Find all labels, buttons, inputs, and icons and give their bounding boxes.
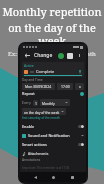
staticText: Day and Time <box>22 78 43 82</box>
button[interactable]: Enable <box>22 122 84 131</box>
staticText: x <box>79 84 81 89</box>
staticText: Monthly repetition <box>2 4 102 19</box>
button[interactable]: Recents <box>68 173 76 181</box>
button[interactable]: Delete <box>67 53 73 59</box>
staticText: Enable <box>22 124 35 129</box>
button[interactable]: Mon 30/09/2024 <box>22 83 55 90</box>
button[interactable]: Back <box>31 173 39 181</box>
staticText: Every <box>22 100 31 105</box>
button[interactable]: Smart actions <box>22 140 84 149</box>
staticText: Sound and Notification <box>28 133 70 138</box>
button[interactable]: 1 <box>33 100 38 106</box>
staticText: Attachments <box>28 151 49 156</box>
staticText: Monthly <box>42 101 55 105</box>
button[interactable]: Active <box>22 62 84 77</box>
button[interactable]: More options <box>76 52 83 59</box>
staticText: Annotations <box>22 158 41 162</box>
button[interactable]: Sound and Notification <box>22 131 84 140</box>
button[interactable]: Monthly <box>40 99 70 106</box>
staticText: Repeat <box>22 91 35 96</box>
button[interactable]: Attachments <box>22 151 84 156</box>
button[interactable]: Back <box>23 51 32 60</box>
staticText: 1 <box>35 101 37 106</box>
button[interactable]: on the day of the week <box>22 108 66 115</box>
staticText: Ex: first Saturday of the month <box>8 50 96 58</box>
staticText: Complete <box>36 69 55 74</box>
staticText: Change <box>34 52 53 59</box>
button[interactable]: 17:00 <box>57 83 73 90</box>
staticText: Mon 30/09/2024 <box>25 84 52 89</box>
button[interactable]: Home <box>49 173 57 181</box>
staticText: Active <box>24 63 34 68</box>
staticText: 17:00 <box>61 84 70 89</box>
button[interactable]: Repeat toggle <box>80 92 84 96</box>
staticText: first saturday of the month <box>22 116 60 120</box>
button[interactable]: Active <box>58 53 64 59</box>
button[interactable]: x <box>75 83 84 90</box>
staticText: on the day of the week <box>24 110 60 114</box>
staticText: Smart actions <box>22 142 47 147</box>
staticText: on the day of the week <box>0 20 104 48</box>
staticText: Important: This reminder is at 17:00 <box>22 166 70 170</box>
